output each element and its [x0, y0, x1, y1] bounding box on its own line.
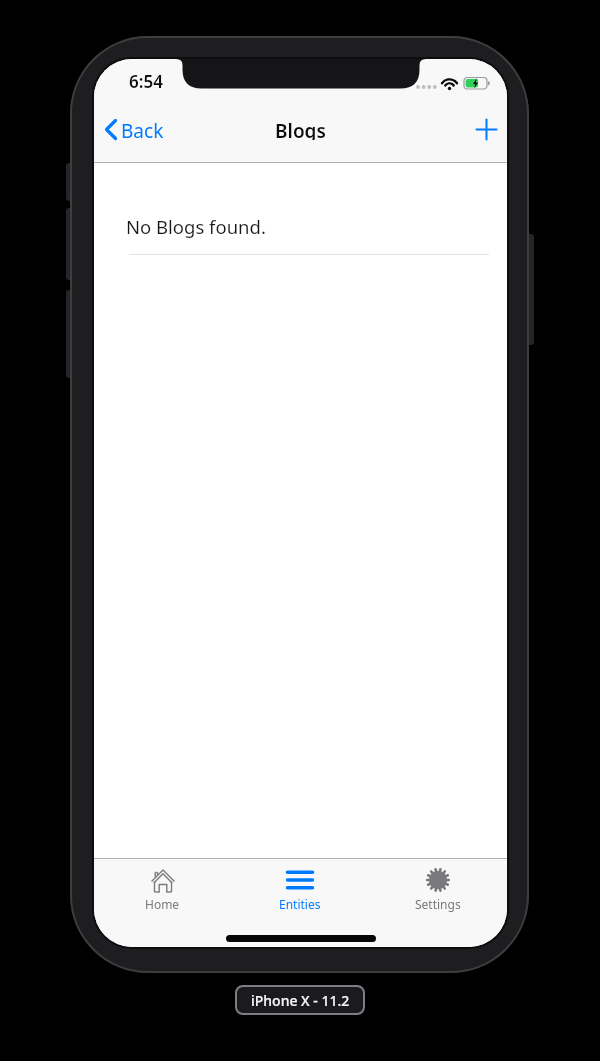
- staticText: Back: [121, 118, 164, 140]
- staticText: iPhone X - 11.2: [251, 991, 350, 1010]
- button[interactable]: [104, 119, 118, 140]
- button[interactable]: Settings: [369, 858, 507, 947]
- staticText: Entities: [279, 896, 321, 912]
- button[interactable]: [476, 119, 497, 140]
- staticText: No Blogs found.: [126, 214, 266, 239]
- button[interactable]: Back: [121, 118, 164, 140]
- staticText: Settings: [415, 896, 461, 912]
- button[interactable]: Entities: [231, 858, 369, 947]
- staticText: 6:54: [129, 70, 163, 92]
- staticText: Home: [145, 896, 180, 912]
- staticText: Blogs: [275, 118, 326, 140]
- button[interactable]: Home: [94, 858, 231, 947]
